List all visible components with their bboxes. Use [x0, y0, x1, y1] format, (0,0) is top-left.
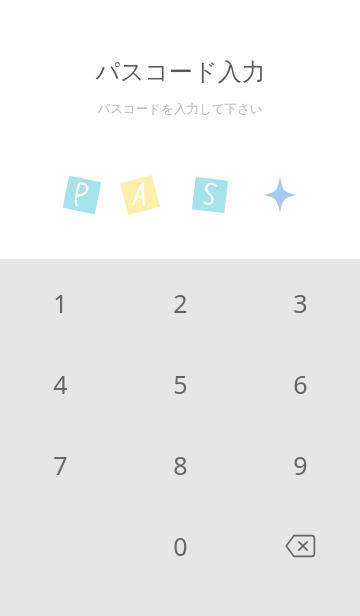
button[interactable]: 7	[0, 424, 120, 505]
staticText: 6	[293, 367, 308, 401]
staticText: 2	[173, 286, 188, 320]
staticText: パスコード入力	[95, 57, 266, 87]
staticText: 3	[293, 286, 308, 320]
button[interactable]: 3	[240, 263, 360, 343]
staticText: 7	[53, 448, 68, 482]
button[interactable]: 2	[120, 263, 240, 343]
button[interactable]: 4	[0, 343, 120, 424]
staticText: 0	[173, 529, 188, 563]
staticText: 4	[53, 367, 68, 401]
staticText: 5	[173, 367, 188, 401]
button[interactable]: 0	[120, 505, 240, 586]
button[interactable]: 8	[120, 424, 240, 505]
staticText: 1	[53, 286, 68, 320]
button[interactable]: 9	[240, 424, 360, 505]
button[interactable]: 5	[120, 343, 240, 424]
button[interactable]: Backspace	[240, 505, 360, 586]
staticText: パスコードを入力して下さい	[97, 101, 263, 117]
staticText: 8	[173, 448, 188, 482]
button[interactable]: 1	[0, 263, 120, 343]
staticText: 9	[293, 448, 308, 482]
button[interactable]: 6	[240, 343, 360, 424]
